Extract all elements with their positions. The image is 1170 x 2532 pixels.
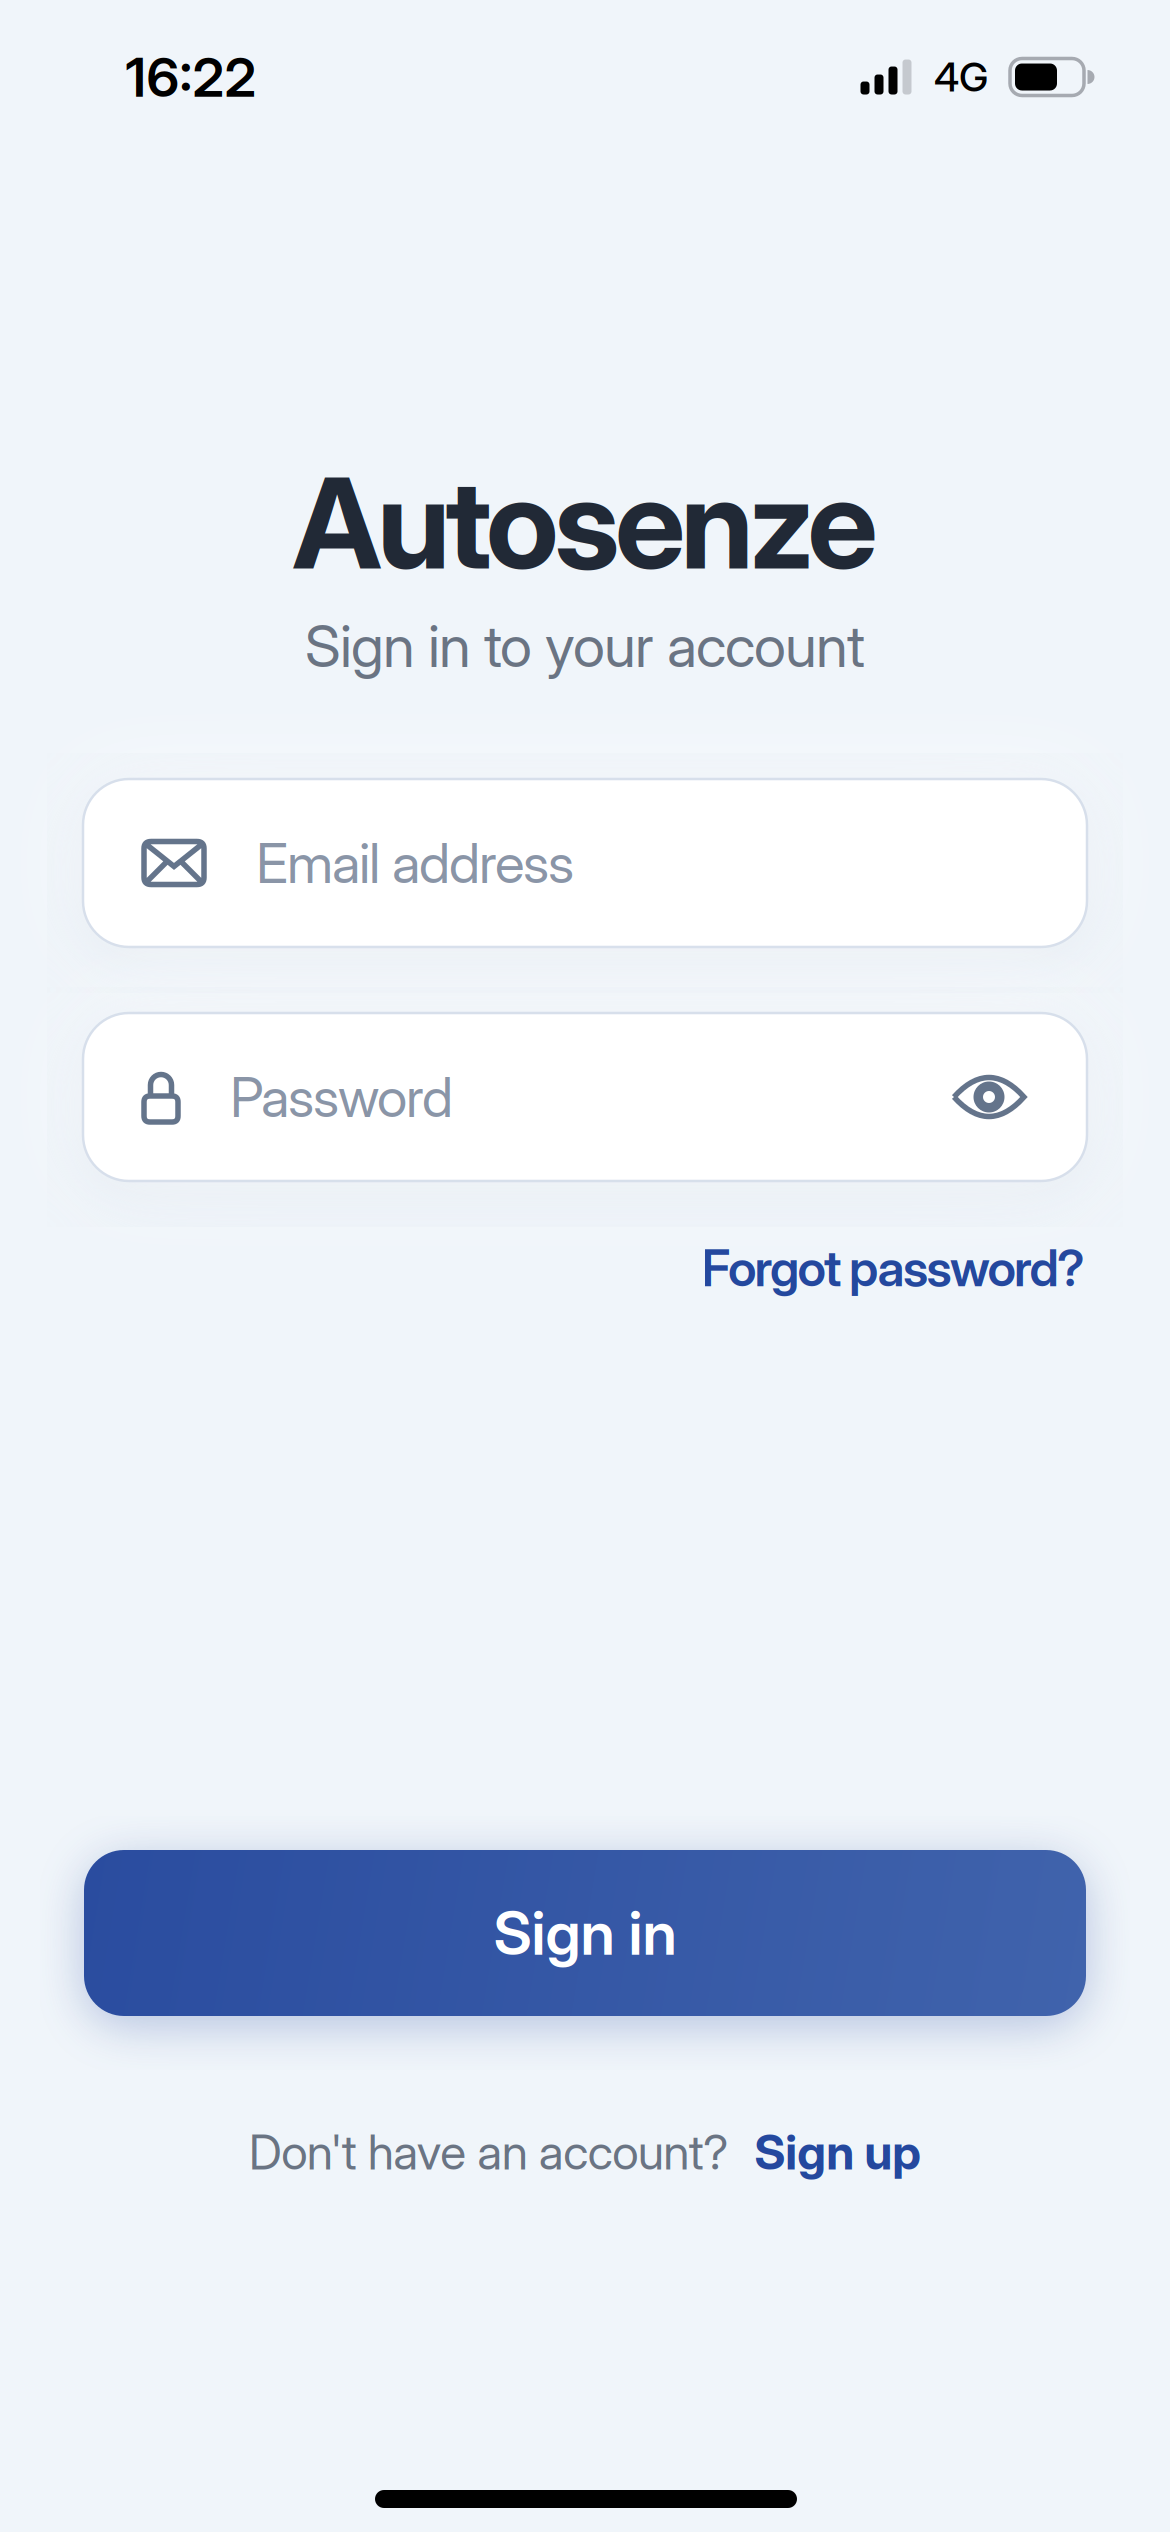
staticText: Don't have an account? [249,2123,728,2181]
button[interactable]: Sign up [754,2123,921,2181]
staticText: Sign in to your account [305,611,865,681]
staticText: Sign up [754,2123,921,2181]
staticText: Autosenze [292,447,877,599]
button[interactable]: Email address [83,779,1087,947]
button[interactable]: Password [83,1013,1087,1181]
staticText: Forgot password? [701,1238,1085,1298]
staticText: Email address [256,830,574,896]
staticText: Password [230,1064,453,1130]
staticText: 16:22 [125,44,256,110]
staticText: Sign in [493,1897,676,1969]
staticText: 4G [934,53,988,101]
button[interactable]: Forgot password? [701,1238,1085,1298]
button[interactable]: Sign in [84,1850,1086,2016]
